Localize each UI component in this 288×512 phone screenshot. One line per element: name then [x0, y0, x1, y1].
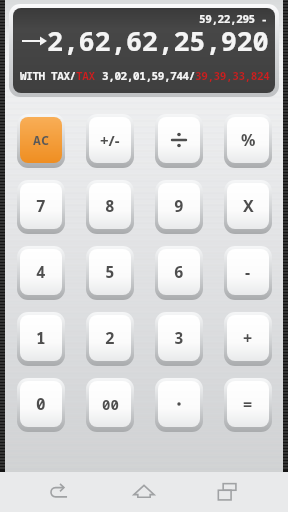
staticText: AC — [33, 131, 50, 149]
button[interactable]: +/- — [86, 114, 134, 168]
button[interactable]: - — [224, 246, 272, 300]
staticText: 39,39,33,824 — [195, 68, 270, 83]
staticText: 5 — [105, 261, 115, 283]
button[interactable]: 5 — [86, 246, 134, 300]
staticText: 1 — [36, 327, 46, 349]
button[interactable]: % — [224, 114, 272, 168]
button[interactable]: Recent apps — [204, 472, 252, 512]
button[interactable]: Home — [120, 472, 168, 512]
button[interactable]: 8 — [86, 180, 134, 234]
staticText: % — [241, 129, 256, 151]
staticText: 4 — [36, 261, 46, 283]
staticText: 3 — [174, 327, 184, 349]
staticText: = — [243, 393, 253, 415]
staticText: 9 — [174, 195, 184, 217]
staticText: 59,22,295 - — [199, 11, 268, 26]
button[interactable]: = — [224, 378, 272, 432]
staticText: X — [243, 195, 254, 217]
staticText: 3,02,01,59,744/ — [102, 68, 195, 83]
button[interactable]: 2 — [86, 312, 134, 366]
staticText: +/- — [100, 130, 120, 150]
staticText: 6 — [174, 261, 184, 283]
button[interactable]: 7 — [17, 180, 65, 234]
button[interactable] — [155, 378, 203, 432]
staticText: 8 — [105, 195, 115, 217]
staticText: 00 — [102, 395, 119, 414]
button[interactable]: + — [224, 312, 272, 366]
button[interactable]: 6 — [155, 246, 203, 300]
staticText: 2 — [105, 327, 115, 349]
button[interactable]: 0 — [17, 378, 65, 432]
staticText: + — [243, 327, 253, 349]
staticText: - — [245, 261, 251, 283]
staticText: TAX — [76, 68, 95, 83]
staticText: WITH TAX/ — [20, 68, 76, 83]
button[interactable] — [155, 114, 203, 168]
button[interactable]: AC — [17, 114, 65, 168]
button[interactable]: 00 — [86, 378, 134, 432]
staticText: 2,62,62,25,920 — [47, 22, 269, 59]
button[interactable]: X — [224, 180, 272, 234]
staticText: 0 — [36, 393, 46, 415]
staticText: 7 — [36, 195, 46, 217]
button[interactable]: Back — [36, 472, 84, 512]
button[interactable]: 4 — [17, 246, 65, 300]
button[interactable]: 9 — [155, 180, 203, 234]
button[interactable]: 3 — [155, 312, 203, 366]
button[interactable]: 1 — [17, 312, 65, 366]
